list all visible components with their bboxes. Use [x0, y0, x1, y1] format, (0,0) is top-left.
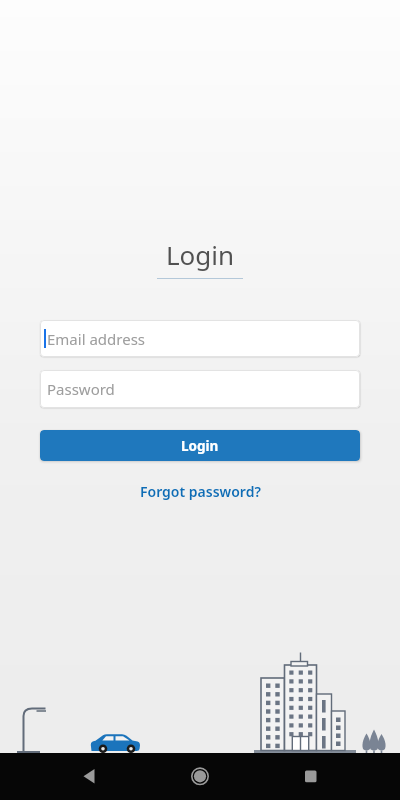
button[interactable] [290, 756, 330, 796]
staticText: Login [166, 237, 235, 272]
staticText: Password [47, 379, 115, 399]
button[interactable]: Forgot password? [140, 482, 261, 501]
staticText: Email address [47, 329, 146, 349]
staticText: Login [181, 437, 219, 455]
button[interactable]: Password [40, 370, 360, 408]
button[interactable] [180, 756, 220, 796]
button[interactable]: Email address [40, 320, 360, 357]
button[interactable] [68, 756, 108, 796]
button[interactable]: Login [40, 430, 360, 461]
